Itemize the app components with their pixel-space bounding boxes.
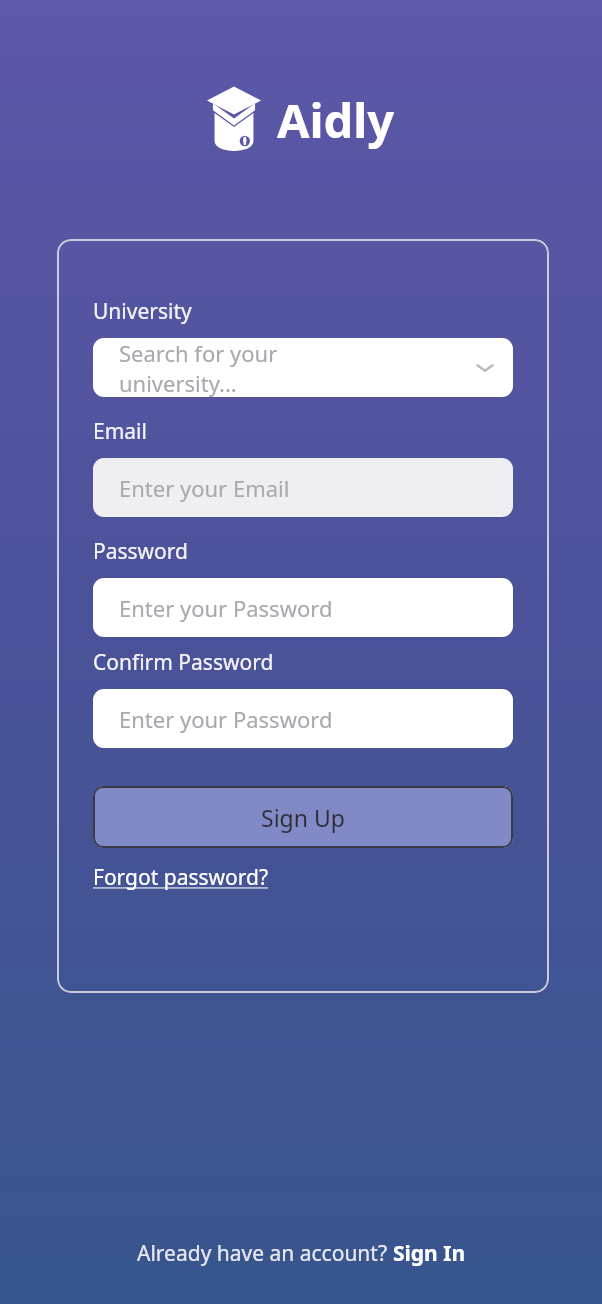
staticText: Search for your university...	[119, 338, 297, 397]
button[interactable]: Sign In	[393, 1239, 466, 1268]
staticText: Sign Up	[261, 802, 345, 833]
staticText: Password	[93, 537, 188, 566]
staticText: University	[93, 297, 192, 326]
staticText: Enter your Email	[119, 473, 290, 503]
staticText: Forgot password?	[93, 863, 269, 892]
staticText: Confirm Password	[93, 648, 274, 677]
staticText: Email	[93, 417, 147, 446]
staticText: Already have an account?	[137, 1239, 393, 1268]
button[interactable]: Forgot password?	[93, 863, 269, 892]
staticText: Enter your Password	[119, 704, 333, 734]
button[interactable]: Search for your university...	[93, 338, 513, 397]
button[interactable]: Enter your Password	[93, 578, 513, 637]
button[interactable]: Enter your Email	[93, 458, 513, 517]
staticText: Aidly	[277, 88, 395, 152]
button[interactable]: Sign Up	[93, 786, 513, 848]
staticText: Enter your Password	[119, 593, 333, 623]
staticText: Sign In	[393, 1239, 466, 1268]
button[interactable]: Enter your Password	[93, 689, 513, 748]
